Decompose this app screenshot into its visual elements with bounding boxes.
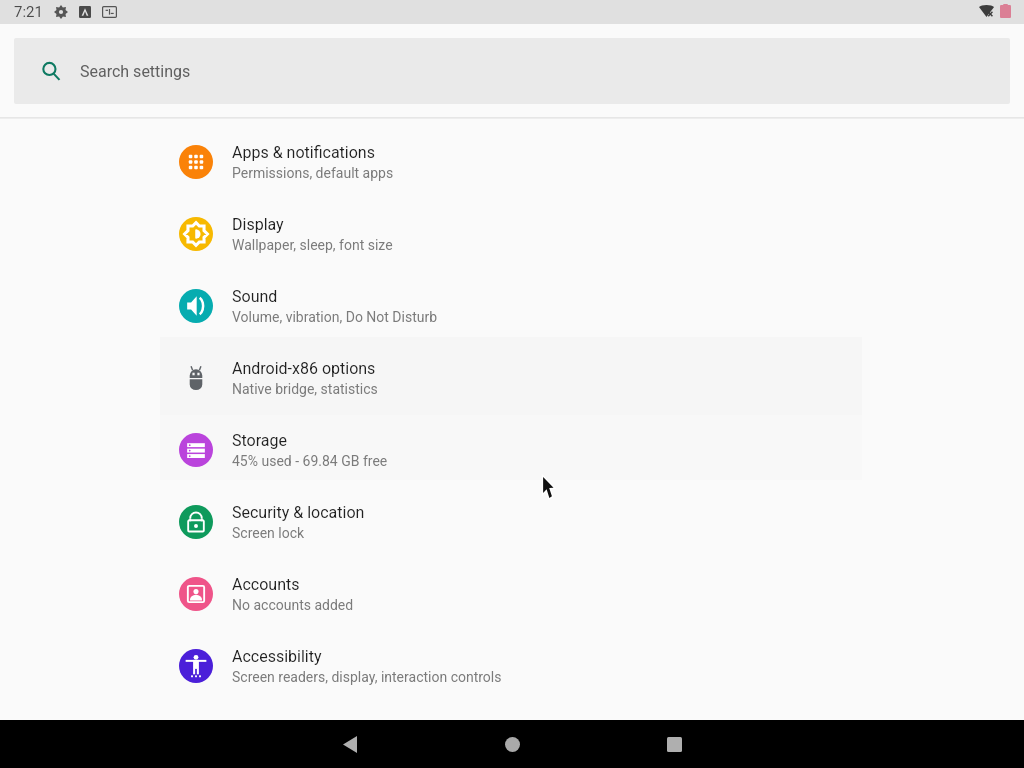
button[interactable]: Home <box>431 720 593 768</box>
staticText: Volume, vibration, Do Not Disturb <box>232 309 438 325</box>
staticText: Screen lock <box>232 525 305 541</box>
staticText: Screen readers, display, interaction con… <box>232 669 502 685</box>
staticText: Accounts <box>232 575 300 594</box>
button[interactable]: Android-x86 options <box>0 342 1024 414</box>
button[interactable]: Storage <box>0 414 1024 486</box>
staticText: Security & location <box>232 503 365 522</box>
staticText: Android-x86 options <box>232 359 376 378</box>
staticText: Apps & notifications <box>232 143 375 162</box>
staticText: No accounts added <box>232 597 354 613</box>
button[interactable]: Back <box>269 720 431 768</box>
staticText: Search settings <box>80 62 191 81</box>
button[interactable]: Apps & notifications <box>0 126 1024 198</box>
button[interactable]: Accounts <box>0 558 1024 630</box>
staticText: Sound <box>232 287 278 306</box>
staticText: Wallpaper, sleep, font size <box>232 237 393 253</box>
staticText: Accessibility <box>232 647 322 666</box>
button[interactable]: Display <box>0 198 1024 270</box>
staticText: 7:21 <box>14 3 43 21</box>
button[interactable]: Search settings <box>14 38 1010 104</box>
button[interactable]: Security & location <box>0 486 1024 558</box>
staticText: Storage <box>232 431 287 450</box>
staticText: Native bridge, statistics <box>232 381 378 397</box>
staticText: 45% used - 69.84 GB free <box>232 453 388 469</box>
button[interactable]: Recent apps <box>593 720 755 768</box>
staticText: Permissions, default apps <box>232 165 394 181</box>
staticText: Display <box>232 215 284 234</box>
button[interactable]: Sound <box>0 270 1024 342</box>
button[interactable]: Accessibility <box>0 630 1024 702</box>
